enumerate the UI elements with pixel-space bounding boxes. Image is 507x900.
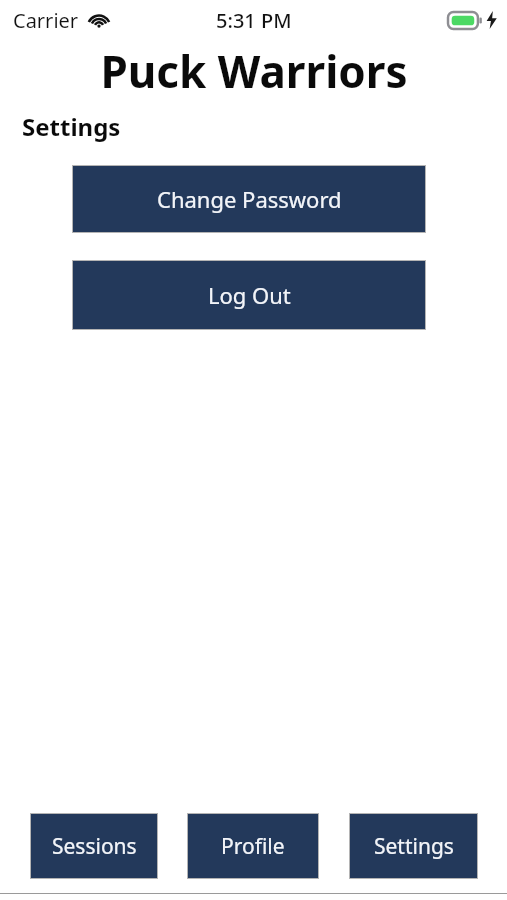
staticText: Puck Warriors (100, 41, 408, 101)
button[interactable]: Profile (187, 813, 319, 879)
staticText: Settings (374, 832, 454, 861)
staticText: Settings (22, 110, 121, 143)
staticText: Carrier (13, 7, 79, 34)
button[interactable]: Change Password (72, 165, 426, 233)
button[interactable]: Settings (349, 813, 478, 879)
staticText: Sessions (52, 832, 137, 861)
button[interactable]: Log Out (72, 260, 426, 330)
button[interactable]: Sessions (30, 813, 158, 879)
staticText: Change Password (157, 184, 342, 214)
staticText: Log Out (208, 280, 291, 310)
staticText: 5:31 PM (216, 7, 292, 34)
staticText: Profile (221, 832, 285, 861)
